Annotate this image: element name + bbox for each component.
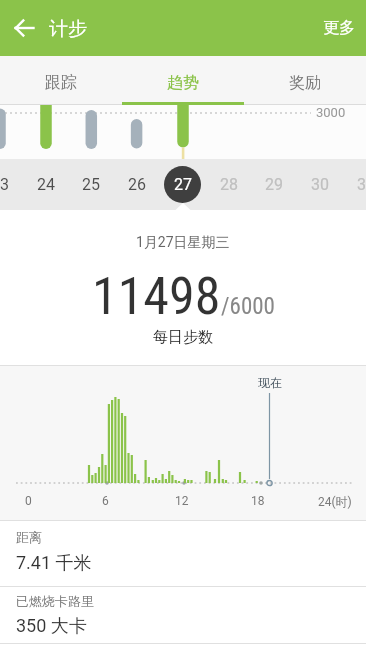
staticText: /6000: [221, 293, 275, 320]
staticText: 11498: [92, 266, 221, 327]
staticText: 27: [174, 175, 192, 194]
staticText: 28: [220, 175, 238, 194]
button[interactable]: 23: [0, 159, 20, 210]
button[interactable]: 30: [300, 159, 340, 210]
button[interactable]: [0, 0, 48, 56]
staticText: 6: [102, 494, 109, 508]
staticText: 更多: [323, 18, 355, 38]
button[interactable]: 28: [209, 159, 249, 210]
staticText: 12: [175, 494, 189, 508]
staticText: 24: [37, 175, 55, 194]
staticText: 29: [265, 175, 283, 194]
staticText: 350 大卡: [16, 615, 87, 638]
button[interactable]: 跟踪: [0, 56, 122, 105]
button[interactable]: 距离: [0, 521, 366, 586]
staticText: 31: [357, 175, 366, 194]
staticText: 18: [251, 494, 265, 508]
staticText: 24(时): [318, 494, 352, 509]
button[interactable]: 奖励: [244, 56, 366, 105]
button[interactable]: 26: [117, 159, 157, 210]
staticText: 7.41 千米: [16, 552, 92, 575]
button[interactable]: 24: [26, 159, 66, 210]
button[interactable]: 更多: [312, 2, 366, 54]
staticText: 跟踪: [45, 73, 77, 93]
staticText: 1月27日星期三: [136, 234, 230, 252]
staticText: 奖励: [289, 73, 321, 93]
staticText: 26: [128, 175, 146, 194]
staticText: 距离: [16, 529, 42, 545]
button[interactable]: 25: [71, 159, 111, 210]
staticText: 23: [0, 175, 9, 194]
staticText: 3000: [316, 105, 346, 120]
button[interactable]: 27: [164, 166, 201, 203]
button[interactable]: 29: [254, 159, 294, 210]
staticText: 25: [82, 175, 100, 194]
staticText: 计步: [49, 17, 87, 41]
staticText: 0: [25, 494, 32, 508]
staticText: 现在: [258, 375, 282, 390]
staticText: 30: [311, 175, 329, 194]
staticText: 每日步数: [153, 328, 213, 347]
button[interactable]: 趋势: [122, 56, 244, 105]
staticText: 已燃烧卡路里: [16, 593, 94, 609]
button[interactable]: 已燃烧卡路里: [0, 587, 366, 643]
staticText: 趋势: [167, 73, 199, 93]
button[interactable]: 31: [346, 159, 366, 210]
